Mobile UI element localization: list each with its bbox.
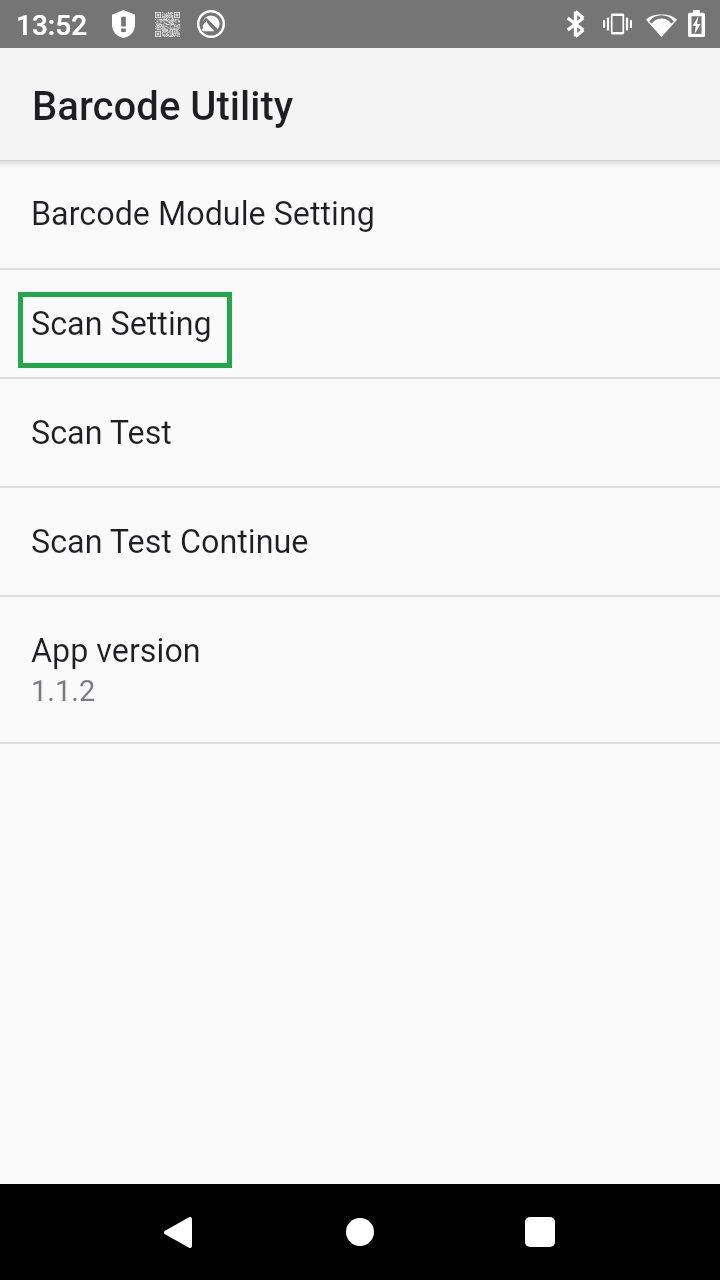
- staticText: Scan Test: [31, 414, 172, 452]
- staticText: 1.1.2: [31, 674, 96, 708]
- staticText: Barcode Module Setting: [31, 195, 375, 233]
- button[interactable]: Scan Test Continue: [0, 488, 720, 595]
- staticText: App version: [31, 632, 201, 670]
- staticText: Barcode Utility: [32, 83, 294, 130]
- button[interactable]: Back: [130, 1184, 226, 1280]
- button[interactable]: Home: [312, 1184, 408, 1280]
- button[interactable]: Barcode Module Setting: [0, 160, 720, 268]
- staticText: Scan Setting: [31, 305, 212, 343]
- button[interactable]: Scan Setting: [0, 270, 720, 377]
- button[interactable]: App version: [0, 597, 720, 742]
- staticText: 13:52: [16, 9, 88, 42]
- staticText: Scan Test Continue: [31, 523, 309, 561]
- button[interactable]: Recent apps: [492, 1184, 588, 1280]
- button[interactable]: Scan Test: [0, 379, 720, 486]
